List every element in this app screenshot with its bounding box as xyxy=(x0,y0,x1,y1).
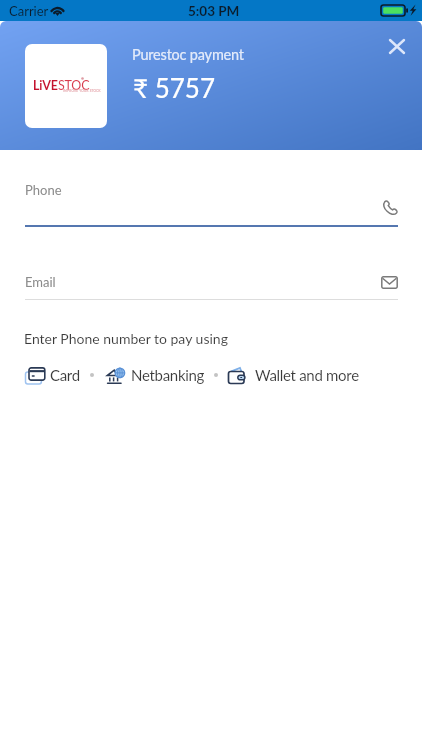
button[interactable]: Wallet and more xyxy=(227,363,359,387)
button[interactable]: Card xyxy=(25,363,80,387)
staticText: STOC xyxy=(58,78,90,93)
staticText: Phone xyxy=(25,182,62,198)
staticText: 5:03 PM xyxy=(188,3,240,19)
staticText: Email xyxy=(25,274,56,290)
button[interactable]: Netbanking xyxy=(104,363,205,387)
staticText: Netbanking xyxy=(131,366,205,384)
staticText: Purestoc payment xyxy=(132,46,244,63)
staticText: LiVE xyxy=(33,78,58,93)
staticText: Wallet and more xyxy=(255,366,359,384)
staticText: Enter Phone number to pay using xyxy=(24,330,228,347)
staticText: Card xyxy=(50,366,80,384)
staticText: IMPROVE YOUR STOCK xyxy=(63,89,101,93)
button[interactable]: Close xyxy=(375,24,419,68)
staticText: ₹ 5757 xyxy=(133,72,216,103)
staticText: Carrier xyxy=(9,3,49,19)
